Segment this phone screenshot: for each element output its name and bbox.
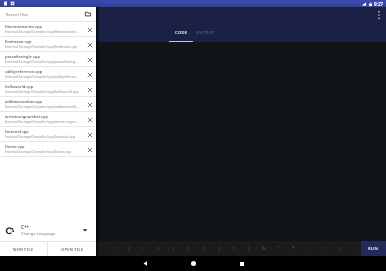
- staticText: /: [128, 245, 130, 252]
- staticText: >: [157, 245, 160, 252]
- button[interactable]: callbyreference.cpp: [0, 67, 96, 81]
- button[interactable]: CODE: [169, 22, 193, 42]
- staticText: Internal Storage/Compiler/cpp/addtwonumb…: [5, 104, 84, 109]
- staticText: callbyreference.cpp: [5, 69, 43, 74]
- staticText: CODE: [175, 30, 188, 36]
- staticText: ;: [113, 245, 115, 252]
- button[interactable]: armstrongnumber.cpp: [0, 112, 96, 126]
- staticText: Recent Files: [6, 12, 29, 17]
- button[interactable]: Remove: [85, 40, 94, 49]
- staticText: ': [68, 245, 70, 252]
- button[interactable]: Remove: [85, 70, 94, 79]
- staticText: ,: [353, 245, 355, 252]
- staticText: |: [172, 245, 175, 252]
- button[interactable]: Remove: [85, 100, 94, 109]
- staticText: RUN: [368, 246, 379, 252]
- staticText: ": [277, 245, 280, 252]
- button[interactable]: findmean.cpp: [0, 37, 96, 51]
- staticText: Demo.cpp: [5, 144, 25, 149]
- staticText: =: [187, 245, 190, 252]
- button[interactable]: OPEN FILE: [48, 242, 96, 256]
- button[interactable]: }: [16, 241, 31, 256]
- button[interactable]: OUTPUT: [193, 22, 217, 42]
- staticText: Internal Storage/Compiler/cpp/Demo.cpp: [5, 149, 84, 154]
- button[interactable]: *: [286, 241, 301, 256]
- staticText: }: [23, 245, 25, 252]
- button[interactable]: Remove: [85, 115, 94, 124]
- button[interactable]: &: [256, 241, 271, 256]
- staticText: -: [308, 245, 310, 252]
- staticText: Change Language: [21, 231, 56, 236]
- button[interactable]: Demo.cpp: [0, 142, 96, 156]
- staticText: NEW FILE: [13, 247, 34, 252]
- staticText: OUTPUT: [196, 30, 215, 36]
- button[interactable]: ": [76, 241, 91, 256]
- staticText: fibonnaciseries.cpp: [5, 24, 43, 29]
- button[interactable]: pascaltraingle.cpp: [0, 52, 96, 66]
- button[interactable]: Open folder: [83, 9, 93, 19]
- button[interactable]: Remove: [85, 145, 94, 154]
- button[interactable]: ]: [211, 241, 226, 256]
- button[interactable]: [: [196, 241, 211, 256]
- button[interactable]: {: [1, 241, 16, 256]
- staticText: findmean.cpp: [5, 39, 32, 44]
- staticText: \: [338, 245, 340, 252]
- staticText: C++: [21, 224, 30, 230]
- button[interactable]: Change language: [81, 226, 89, 234]
- button[interactable]: factorial.cpp: [0, 127, 96, 141]
- button[interactable]: More options: [372, 8, 386, 22]
- button[interactable]: (: [31, 241, 46, 256]
- staticText: ": [82, 245, 85, 252]
- staticText: OPEN FILE: [61, 247, 84, 252]
- staticText: [: [203, 245, 205, 252]
- button[interactable]: RUN: [361, 241, 386, 256]
- staticText: factorial.cpp: [5, 129, 29, 134]
- staticText: ^: [232, 245, 235, 252]
- button[interactable]: ): [46, 241, 61, 256]
- button[interactable]: Remove: [85, 25, 94, 34]
- button[interactable]: NEW FILE: [0, 242, 47, 256]
- staticText: Internal Storage/Compiler/cpp/findmean.c…: [5, 44, 84, 49]
- staticText: 9:27: [374, 1, 384, 7]
- staticText: Internal Storage/Compiler/cpp/fibonnacis…: [5, 29, 84, 34]
- staticText: Internal Storage/Compiler/cpp/callbyrefe…: [5, 74, 84, 79]
- staticText: ,: [98, 245, 100, 252]
- staticText: <: [142, 245, 145, 252]
- staticText: *: [292, 245, 295, 252]
- button[interactable]: ,: [91, 241, 106, 256]
- button[interactable]: Remove: [85, 85, 94, 94]
- button[interactable]: fibonnaciseries.cpp: [0, 22, 96, 36]
- button[interactable]: Remove: [85, 55, 94, 64]
- staticText: armstrongnumber.cpp: [5, 114, 48, 119]
- button[interactable]: ': [61, 241, 76, 256]
- staticText: addtwonumber.cpp: [5, 99, 43, 104]
- staticText: &: [262, 245, 266, 252]
- button[interactable]: Remove: [85, 130, 94, 139]
- button[interactable]: helloworld.cpp: [0, 82, 96, 96]
- button[interactable]: Recents: [234, 256, 249, 271]
- staticText: Internal Storage/Compiler/cpp/helloworld…: [5, 89, 84, 94]
- button[interactable]: Home: [186, 256, 201, 271]
- staticText: Internal Storage/Compiler/cpp/armstrongn…: [5, 119, 84, 124]
- button[interactable]: addtwonumber.cpp: [0, 97, 96, 111]
- button[interactable]: Back: [138, 256, 153, 271]
- staticText: pascaltraingle.cpp: [5, 54, 40, 59]
- button[interactable]: C++: [0, 219, 96, 241]
- staticText: :: [323, 245, 325, 252]
